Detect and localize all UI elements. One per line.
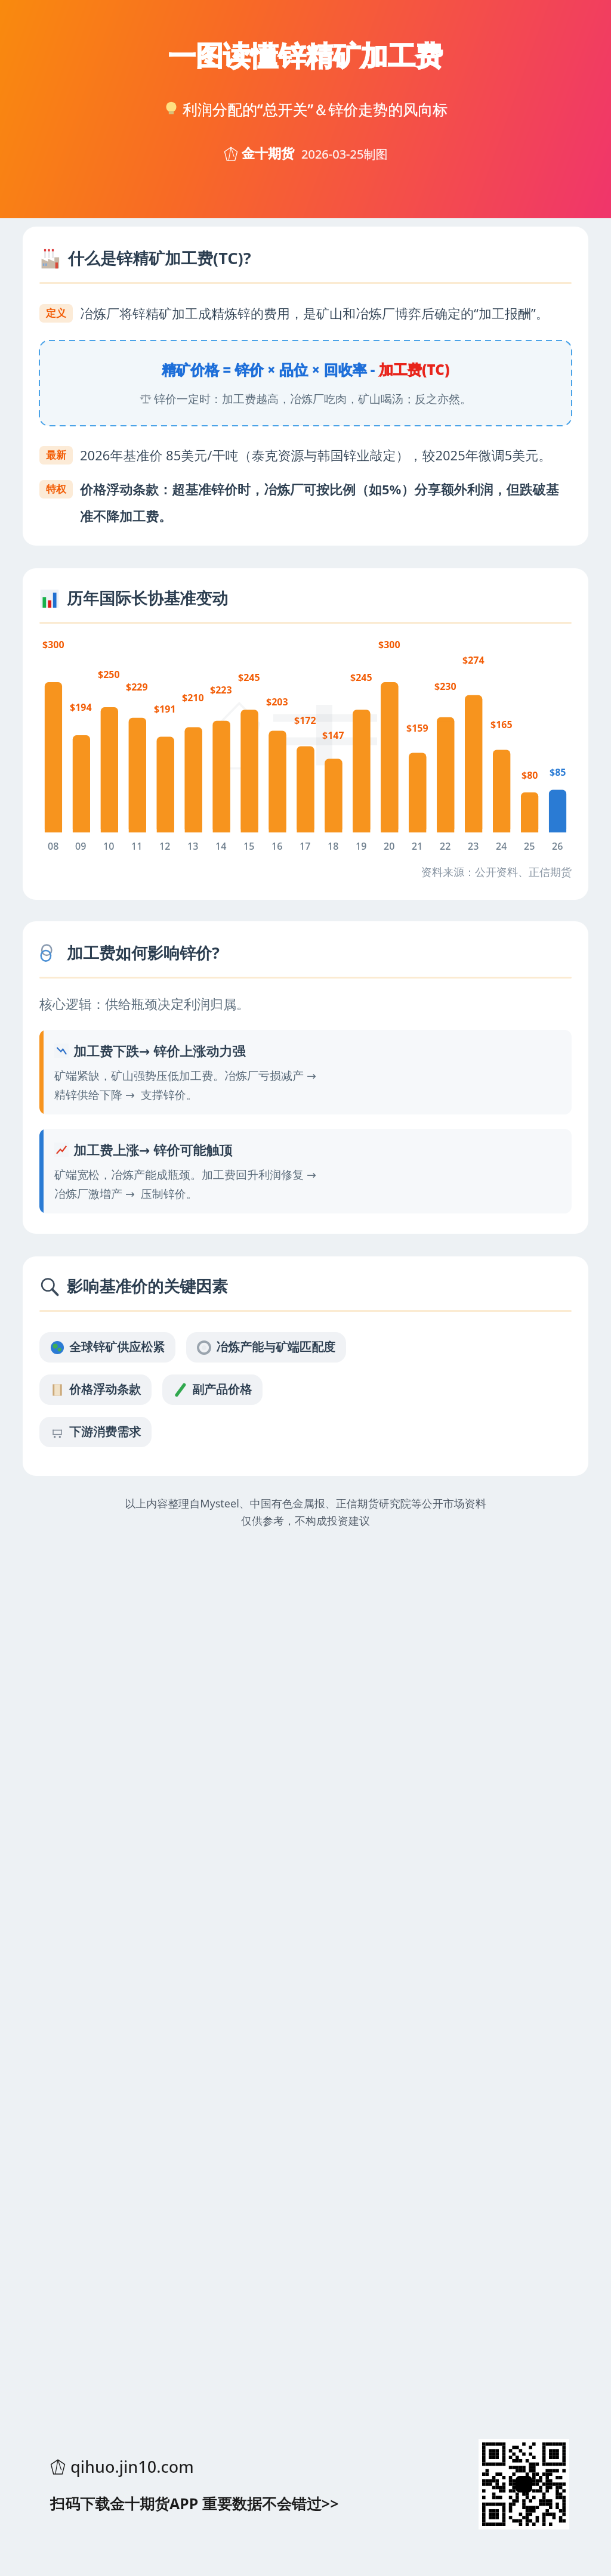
button[interactable]: 定义 [39, 304, 73, 323]
staticText: $300 [378, 638, 400, 651]
staticText: 13 [187, 840, 199, 853]
staticText: 冶炼厂激增产 → 压制锌价。 [54, 1186, 198, 1202]
staticText: 16 [271, 840, 283, 853]
staticText: 价格浮动条款 [69, 1382, 141, 1397]
staticText: 22 [440, 840, 451, 853]
staticText: 历年国际长协基准变动 [67, 589, 228, 609]
button[interactable]: 副产品价格 [162, 1374, 263, 1405]
staticText: $223 [210, 683, 232, 696]
button[interactable]: 特权 [39, 480, 73, 499]
staticText: $203 [266, 695, 288, 708]
staticText: 14 [215, 840, 227, 853]
staticText: 18 [328, 840, 339, 853]
staticText: 21 [412, 840, 423, 853]
staticText: $274 [462, 654, 485, 667]
staticText: 26 [552, 840, 563, 853]
staticText: 利润分配的“总开关”＆锌价走势的风向标 [183, 99, 448, 119]
staticText: 核心逻辑：供给瓶颈决定利润归属。 [39, 996, 249, 1013]
button[interactable]: 加工费下跌→ 锌价上涨动力强 [39, 1030, 572, 1114]
staticText: 冶炼产能与矿端匹配度 [216, 1340, 335, 1355]
staticText: 定义 [46, 307, 66, 320]
staticText: 影响基准价的关键因素 [67, 1277, 228, 1297]
staticText: 24 [496, 840, 507, 853]
staticText: 扫码下载金十期货APP 重要数据不会错过>> [50, 2493, 339, 2513]
button[interactable]: 价格浮动条款 [39, 1374, 152, 1405]
button[interactable]: 全球锌矿供应松紧 [39, 1332, 175, 1363]
staticText: $194 [70, 701, 92, 714]
staticText: 08 [48, 840, 59, 853]
staticText: 副产品价格 [192, 1382, 252, 1397]
staticText: 精锌供给下降 → 支撑锌价。 [54, 1087, 198, 1103]
staticText: 下游消费需求 [69, 1425, 141, 1439]
staticText: 加工费(TC) [379, 360, 450, 379]
staticText: 什么是锌精矿加工费(TC)? [68, 247, 251, 269]
staticText: 最新 [46, 449, 66, 462]
staticText: 仅供参考，不构成投资建议 [23, 1515, 588, 1528]
button[interactable]: 冶炼产能与矿端匹配度 [186, 1332, 346, 1363]
staticText: 20 [384, 840, 395, 853]
staticText: 一图读懂锌精矿加工费 [168, 39, 443, 74]
staticText: 价格浮动条款：超基准锌价时，冶炼厂可按比例（如5%）分享额外利润，但跌破基准不降… [80, 480, 572, 525]
staticText: $300 [42, 638, 64, 651]
staticText: $80 [521, 769, 538, 782]
staticText: 金十期货 [242, 145, 294, 162]
staticText: $191 [154, 702, 176, 716]
staticText: 12 [159, 840, 171, 853]
staticText: 2026-03-25制图 [301, 146, 388, 162]
button[interactable]: 加工费上涨→ 锌价可能触顶 [39, 1129, 572, 1213]
staticText: 冶炼厂将锌精矿加工成精炼锌的费用，是矿山和冶炼厂博弈后确定的“加工报酬”。 [80, 304, 572, 322]
staticText: $147 [322, 729, 344, 742]
staticText: 矿端紧缺，矿山强势压低加工费。冶炼厂亏损减产 → [54, 1068, 316, 1083]
staticText: 锌价一定时：加工费越高，冶炼厂吃肉，矿山喝汤；反之亦然。 [154, 392, 471, 407]
staticText: $230 [434, 680, 456, 693]
staticText: $210 [182, 691, 204, 704]
staticText: 矿端宽松，冶炼产能成瓶颈。加工费回升利润修复 → [54, 1167, 316, 1182]
staticText: $172 [294, 714, 316, 727]
staticText: 精矿价格 = 锌价 × 品位 × 回收率 - [162, 360, 379, 379]
staticText: 10 [103, 840, 115, 853]
staticText: $85 [550, 766, 566, 779]
staticText: 15 [243, 840, 255, 853]
staticText: $245 [350, 671, 372, 684]
staticText: 特权 [46, 483, 66, 496]
staticText: 19 [356, 840, 367, 853]
staticText: 09 [75, 840, 87, 853]
staticText: 全球锌矿供应松紧 [69, 1340, 165, 1355]
button[interactable]: 最新 [39, 446, 73, 465]
staticText: 2026年基准价 85美元/干吨（泰克资源与韩国锌业敲定），较2025年微调5美… [80, 446, 572, 464]
staticText: 17 [300, 840, 311, 853]
staticText: 以上内容整理自Mysteel、中国有色金属报、正信期货研究院等公开市场资料 [23, 1496, 588, 1511]
staticText: $159 [406, 722, 428, 735]
staticText: 23 [468, 840, 479, 853]
button[interactable]: 扫码下载金十期货APP [479, 2439, 569, 2529]
staticText: $165 [490, 718, 513, 731]
staticText: 加工费如何影响锌价? [67, 942, 220, 964]
staticText: $250 [98, 668, 120, 681]
button[interactable]: 下游消费需求 [39, 1417, 152, 1447]
staticText: 加工费下跌→ 锌价上涨动力强 [73, 1042, 246, 1060]
staticText: qihuo.jin10.com [70, 2456, 194, 2478]
staticText: 加工费上涨→ 锌价可能触顶 [73, 1141, 233, 1159]
staticText: 11 [131, 840, 143, 853]
staticText: $245 [238, 671, 260, 684]
staticText: $229 [126, 680, 148, 693]
staticText: 25 [524, 840, 535, 853]
staticText: 资料来源：公开资料、正信期货 [39, 866, 572, 880]
